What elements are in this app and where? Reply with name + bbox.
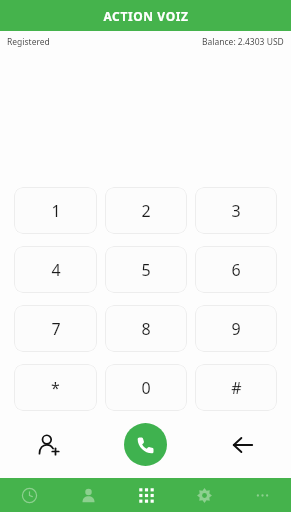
button[interactable]: Recents — [0, 478, 59, 512]
button[interactable]: Contacts — [59, 478, 117, 512]
button[interactable]: * — [14, 364, 97, 411]
button[interactable]: 4 — [14, 246, 97, 293]
staticText: ACTION VOIZ — [103, 8, 189, 24]
button[interactable]: 1 — [14, 187, 97, 234]
staticText: Balance: 2.4303 USD — [202, 36, 284, 48]
button[interactable]: Keypad — [117, 478, 175, 512]
button[interactable]: Settings — [175, 478, 233, 512]
button[interactable]: 6 — [195, 246, 277, 293]
button[interactable]: 2 — [105, 187, 187, 234]
staticText: Registered — [7, 36, 50, 48]
staticText: 6 — [231, 259, 241, 281]
button[interactable]: More — [233, 478, 291, 512]
button[interactable]: 5 — [105, 246, 187, 293]
button[interactable]: Call — [124, 423, 167, 466]
button[interactable]: Delete — [194, 411, 291, 478]
staticText: 9 — [231, 318, 241, 340]
staticText: # — [231, 377, 242, 399]
button[interactable]: 7 — [14, 305, 97, 352]
button[interactable]: 3 — [195, 187, 277, 234]
staticText: 7 — [51, 318, 61, 340]
button[interactable]: 9 — [195, 305, 277, 352]
button[interactable]: # — [195, 364, 277, 411]
button[interactable]: Add contact — [0, 411, 97, 478]
button[interactable]: 0 — [105, 364, 187, 411]
staticText: 3 — [231, 200, 241, 222]
staticText: * — [51, 377, 60, 399]
button[interactable]: 8 — [105, 305, 187, 352]
staticText: 1 — [51, 200, 61, 222]
staticText: 5 — [141, 259, 151, 281]
staticText: 4 — [51, 259, 61, 281]
staticText: 0 — [141, 377, 151, 399]
staticText: 8 — [141, 318, 151, 340]
staticText: 2 — [141, 200, 151, 222]
